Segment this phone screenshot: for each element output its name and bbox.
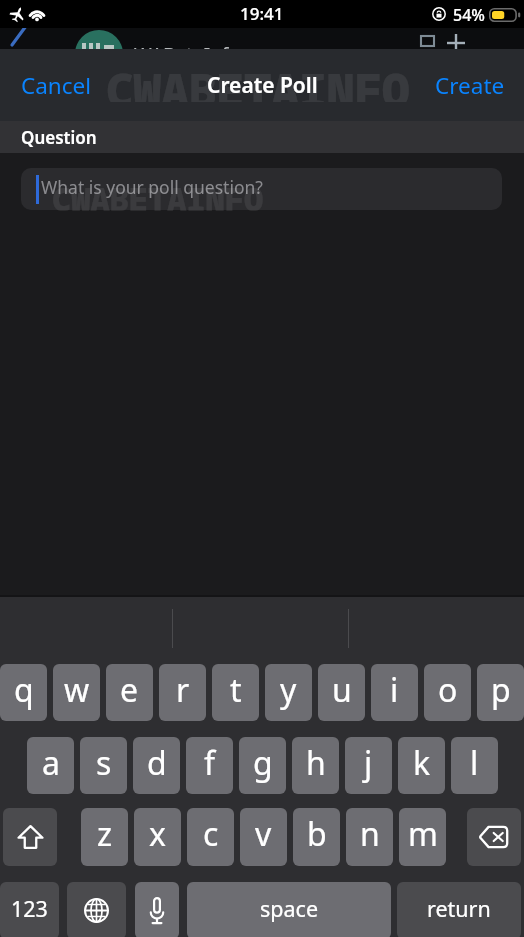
staticText: Create Poll: [207, 71, 318, 100]
staticText: z: [97, 812, 113, 856]
button[interactable]: q: [0, 664, 47, 721]
button[interactable]: e: [106, 664, 153, 721]
button[interactable]: w: [53, 664, 100, 721]
button[interactable]: x: [134, 808, 181, 866]
button[interactable]: b: [293, 808, 340, 866]
button[interactable]: Cancel: [0, 56, 113, 115]
button[interactable]: Switch keyboard: [67, 882, 126, 937]
button[interactable]: k: [398, 737, 445, 794]
button[interactable]: i: [371, 664, 418, 721]
staticText: y: [280, 668, 297, 712]
button[interactable]: g: [239, 737, 286, 794]
button[interactable]: n: [346, 808, 393, 866]
staticText: f: [204, 741, 216, 785]
staticText: w: [64, 668, 90, 712]
button[interactable]: l: [451, 737, 498, 794]
button[interactable]: t: [212, 664, 259, 721]
button[interactable]: d: [133, 737, 180, 794]
button[interactable]: o: [424, 664, 471, 721]
staticText: e: [120, 668, 139, 712]
staticText: WABetaInfo: [134, 42, 240, 49]
staticText: u: [332, 668, 352, 712]
button[interactable]: p: [477, 664, 524, 721]
button[interactable]: f: [186, 737, 233, 794]
staticText: n: [360, 812, 380, 856]
button[interactable]: space: [187, 882, 391, 937]
staticText: k: [413, 741, 431, 785]
button[interactable]: z: [81, 808, 128, 866]
staticText: a: [42, 741, 60, 785]
button[interactable]: s: [80, 737, 127, 794]
staticText: Cancel: [21, 70, 92, 101]
staticText: s: [96, 741, 112, 785]
staticText: return: [427, 894, 491, 923]
button[interactable]: Dictate: [135, 882, 179, 937]
button[interactable]: r: [159, 664, 206, 721]
staticText: o: [438, 668, 458, 712]
button[interactable]: c: [187, 808, 234, 866]
staticText: p: [491, 668, 511, 712]
staticText: 54%: [453, 4, 485, 26]
button[interactable]: y: [265, 664, 312, 721]
button[interactable]: Shift: [3, 808, 57, 866]
staticText: t: [230, 668, 242, 712]
button[interactable]: h: [292, 737, 339, 794]
staticText: Create: [435, 70, 505, 101]
staticText: What is your poll question?: [41, 175, 263, 199]
button[interactable]: return: [397, 882, 521, 937]
button[interactable]: m: [399, 808, 446, 866]
staticText: q: [14, 668, 34, 712]
staticText: b: [307, 812, 327, 856]
staticText: l: [470, 741, 479, 785]
staticText: g: [253, 741, 273, 785]
staticText: CWABETAINFO: [52, 177, 264, 213]
button[interactable]: j: [345, 737, 392, 794]
staticText: 19:41: [240, 2, 284, 25]
staticText: h: [306, 741, 326, 785]
staticText: 123: [11, 894, 48, 923]
staticText: CWABETAINFO: [106, 58, 410, 102]
button[interactable]: 123: [0, 882, 59, 937]
staticText: i: [390, 668, 399, 712]
staticText: r: [176, 668, 190, 712]
staticText: d: [147, 741, 167, 785]
staticText: c: [203, 812, 219, 856]
button[interactable]: a: [27, 737, 74, 794]
staticText: x: [149, 812, 166, 856]
staticText: Question: [21, 126, 97, 149]
staticText: space: [260, 894, 319, 923]
button[interactable]: Create: [414, 56, 524, 115]
button[interactable]: v: [240, 808, 287, 866]
staticText: m: [408, 812, 438, 856]
staticText: j: [364, 741, 373, 785]
button[interactable]: What is your poll question?: [21, 168, 502, 210]
button[interactable]: u: [318, 664, 365, 721]
button[interactable]: Backspace: [467, 808, 521, 866]
staticText: v: [255, 812, 272, 856]
